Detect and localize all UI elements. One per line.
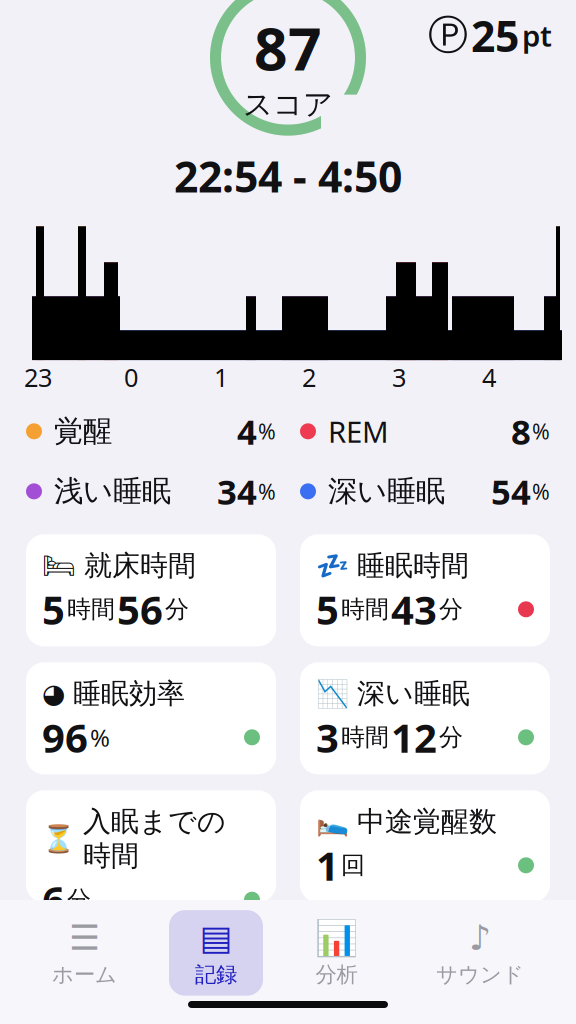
button[interactable]: 💤 [300,534,550,646]
staticText: % [532,477,550,505]
staticText: 深い睡眠 [357,676,470,711]
staticText: 浅い睡眠 [54,473,171,509]
button[interactable]: ◕ [26,662,276,774]
staticText: 分 [67,885,91,914]
staticText: サウンド [436,961,524,988]
staticText: 6 [42,873,65,926]
staticText: 3 [392,360,406,394]
button[interactable]: 🛌 [300,790,550,902]
staticText: 深い睡眠 [328,473,445,509]
staticText: 56 [117,583,163,636]
staticText: 1 [316,839,339,892]
staticText: ☰ [69,918,100,957]
staticText: 5 [42,583,65,636]
staticText: 12 [391,711,437,764]
staticText: 8 [511,408,531,454]
staticText: ◕ [42,678,65,709]
staticText: ⏳ [42,823,75,854]
staticText: 📉 [316,678,349,709]
staticText: 🛏 [42,550,76,581]
button[interactable]: ♪ [410,910,550,996]
staticText: 入眠までの時間 [83,804,226,873]
staticText: 時間 [341,595,389,624]
staticText: 分 [439,595,463,624]
staticText: 就床時間 [84,548,196,583]
staticText: % [532,417,550,445]
staticText: 54 [491,468,531,514]
staticText: 34 [217,468,257,514]
staticText: スコア [243,87,333,123]
button[interactable]: 📊 [289,910,384,996]
staticText: 覚醒 [54,413,112,449]
button[interactable]: ▤ [169,910,263,996]
staticText: 分 [165,595,189,624]
staticText: 🛌 [316,806,349,837]
button[interactable]: ☰ [26,910,143,996]
staticText: 1 [214,360,228,394]
staticText: % [258,417,276,445]
staticText: 4 [482,360,496,394]
staticText: 5 [316,583,339,636]
staticText: 0 [124,360,138,394]
button[interactable]: Ⓟ [428,0,576,64]
staticText: 分 [439,723,463,752]
button[interactable]: 🛏 [26,534,276,646]
staticText: 3 [316,711,339,764]
staticText: 分析 [315,962,357,988]
staticText: 睡眠効率 [73,676,185,711]
staticText: 回 [341,851,365,880]
button[interactable]: 📉 [300,662,550,774]
button[interactable]: ⏳ [26,790,276,902]
staticText: ▤ [199,918,232,957]
staticText: 87 [254,9,322,87]
staticText: 2 [302,360,316,394]
staticText: Ⓟ [428,11,468,60]
staticText: pt [522,16,552,55]
staticText: 43 [391,583,437,636]
staticText: % [258,477,276,505]
staticText: 時間 [341,723,389,752]
staticText: 📊 [315,918,358,958]
staticText: 96 [42,711,88,764]
staticText: ♪ [469,918,491,957]
staticText: 25 [471,7,519,64]
staticText: 睡眠時間 [357,548,469,583]
staticText: REM [328,412,389,451]
staticText: 中途覚醒数 [357,804,497,839]
staticText: 時間 [67,595,115,624]
staticText: % [90,721,110,753]
staticText: 記録 [195,961,237,988]
staticText: 4 [237,408,257,454]
staticText: 23 [24,360,52,394]
staticText: ホーム [52,961,117,988]
staticText: 💤 [316,550,349,581]
staticText: 22:54 - 4:50 [174,148,402,204]
